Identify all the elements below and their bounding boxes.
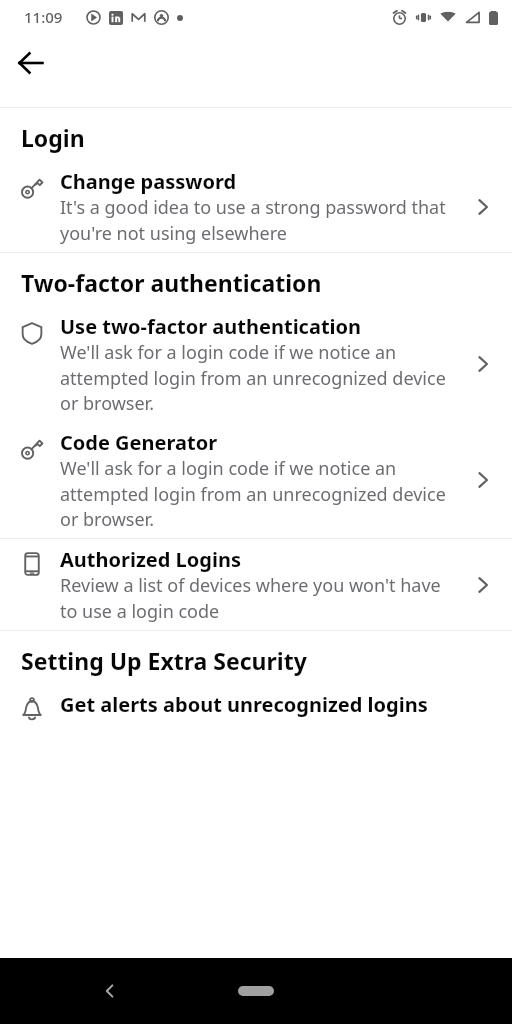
staticText: Authorized Logins [60, 546, 241, 573]
button[interactable]: Use two-factor authentication [0, 306, 512, 422]
staticText: Setting Up Extra Security [21, 645, 496, 676]
staticText: Code Generator [60, 429, 218, 456]
staticText: Get alerts about unrecognized logins [60, 691, 428, 718]
button[interactable]: Authorized Logins [0, 539, 512, 630]
staticText: Two-factor authentication [21, 267, 496, 298]
staticText: Change password [60, 168, 237, 195]
staticText: 11:09 [24, 7, 63, 27]
button[interactable]: Back [7, 39, 55, 87]
staticText: We'll ask for a login code if we notice … [60, 456, 462, 531]
button[interactable]: Change password [0, 161, 512, 252]
staticText: It's a good idea to use a strong passwor… [60, 195, 462, 245]
staticText: Use two-factor authentication [60, 313, 362, 340]
button[interactable]: Home [226, 976, 286, 1006]
button[interactable]: Back [90, 971, 130, 1011]
staticText: Login [21, 122, 496, 153]
staticText: We'll ask for a login code if we notice … [60, 340, 462, 415]
staticText: Review a list of devices where you won't… [60, 573, 462, 623]
button[interactable]: Code Generator [0, 422, 512, 538]
button[interactable]: Get alerts about unrecognized logins [0, 684, 512, 730]
